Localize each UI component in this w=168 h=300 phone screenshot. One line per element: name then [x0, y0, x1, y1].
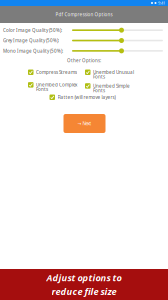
button[interactable]: → Next [63, 114, 105, 133]
button[interactable]: Unembed Unusual [85, 69, 141, 80]
staticText: Other Options: [67, 57, 101, 64]
button[interactable]: Unembed Simple [85, 83, 141, 94]
staticText: Unembed Unusual [93, 69, 134, 75]
staticText: → Next [77, 120, 91, 127]
staticText: Color Image Quality (50%): [3, 27, 62, 33]
staticText: Pdf Compression Options [55, 11, 112, 18]
staticText: Unembed Simple [93, 83, 130, 89]
button[interactable]: Unembed Complex [28, 82, 84, 93]
staticText: Fonts [93, 74, 105, 80]
staticText: Grey Image Quality (50%): [3, 37, 59, 44]
staticText: Adjust options to [46, 271, 121, 284]
staticText: Compress Streams [36, 69, 77, 75]
button[interactable]: Flatten (will remove layers) [49, 94, 105, 100]
staticText: Mono Image Quality (50%): [3, 48, 63, 54]
staticText: reduce file size [51, 285, 116, 298]
staticText: Fonts [36, 86, 48, 92]
staticText: Unembed Complex [36, 82, 77, 88]
staticText: Fonts [93, 87, 105, 93]
staticText: Flatten (will remove layers) [57, 94, 115, 100]
button[interactable]: Compress Streams [28, 69, 84, 75]
staticText: 9:41 [158, 0, 165, 6]
